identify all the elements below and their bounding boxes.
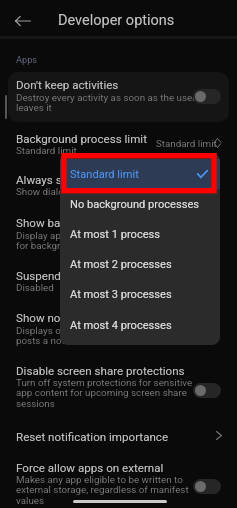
staticText: Destroy every activity as soon as the us… bbox=[16, 92, 196, 114]
staticText: Apps bbox=[16, 54, 38, 65]
button[interactable] bbox=[8, 72, 229, 122]
staticText: Displays on-screen warning when an app p… bbox=[16, 325, 202, 347]
button[interactable] bbox=[0, 307, 237, 353]
staticText: Force allow apps on external bbox=[16, 461, 164, 475]
button[interactable] bbox=[0, 209, 237, 255]
button[interactable]: At most 3 processes bbox=[60, 279, 220, 309]
button[interactable]: Standard limit bbox=[60, 159, 220, 189]
staticText: No background processes bbox=[70, 198, 199, 211]
staticText: Show dialog every time an app crashes bbox=[16, 186, 186, 197]
staticText: Standard limit bbox=[70, 168, 139, 181]
staticText: Turn off system protections for sensitiv… bbox=[16, 377, 193, 410]
staticText: Display app not responding dialog for ba… bbox=[16, 230, 164, 252]
button[interactable]: At most 1 process bbox=[60, 219, 220, 249]
staticText: Background process limit bbox=[16, 132, 147, 146]
button[interactable]: At most 2 processes bbox=[60, 249, 220, 279]
staticText: Suspend execution bbox=[16, 269, 114, 283]
staticText: Disabled bbox=[16, 282, 54, 293]
button[interactable] bbox=[0, 264, 237, 300]
staticText: At most 1 process bbox=[70, 228, 161, 241]
staticText: Show background ANRs bbox=[16, 216, 141, 230]
staticText: Don't keep activities bbox=[16, 78, 119, 92]
staticText: Makes any app eligible to be written to … bbox=[16, 474, 189, 507]
staticText: Reset notification importance bbox=[16, 430, 169, 444]
button[interactable] bbox=[0, 422, 237, 450]
staticText: At most 3 processes bbox=[70, 288, 172, 301]
button[interactable] bbox=[0, 455, 237, 508]
button[interactable] bbox=[0, 126, 237, 162]
staticText: Standard limit bbox=[156, 138, 217, 149]
button[interactable] bbox=[0, 166, 237, 202]
button[interactable]: Disable screen share protections bbox=[193, 383, 221, 398]
staticText: At most 2 processes bbox=[70, 258, 172, 271]
button[interactable]: At most 4 processes bbox=[60, 310, 220, 340]
staticText: Developer options bbox=[58, 12, 175, 29]
staticText: Always show crash dialog bbox=[16, 173, 150, 187]
staticText: Show notification channel warnings bbox=[16, 311, 199, 325]
button[interactable] bbox=[0, 359, 237, 417]
button[interactable]: Back bbox=[11, 9, 35, 33]
button[interactable]: Force allow apps on external bbox=[193, 479, 221, 494]
staticText: At most 4 processes bbox=[70, 319, 172, 332]
button[interactable]: Don't keep activities bbox=[193, 89, 221, 104]
button[interactable]: No background processes bbox=[60, 189, 220, 219]
staticText: Standard limit bbox=[16, 145, 77, 156]
staticText: Disable screen share protections bbox=[16, 364, 185, 378]
